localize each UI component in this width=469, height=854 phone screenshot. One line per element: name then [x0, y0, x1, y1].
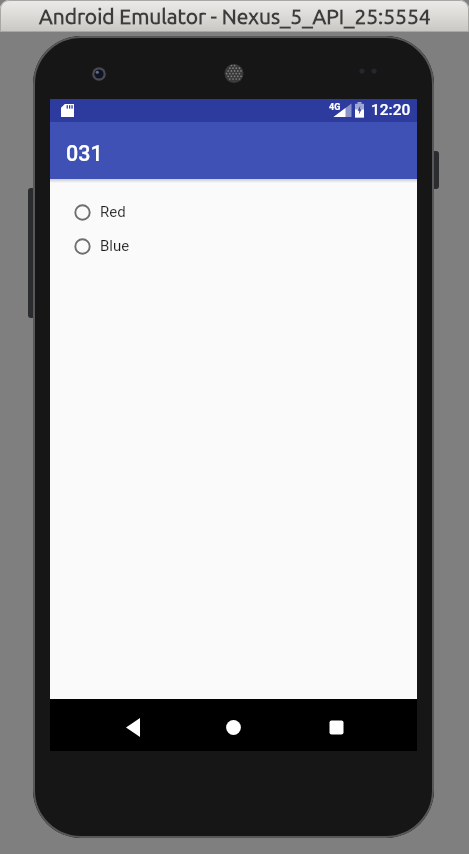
staticText: 031: [66, 141, 103, 166]
button[interactable]: [316, 707, 357, 748]
button[interactable]: [213, 707, 254, 748]
button[interactable]: [112, 707, 153, 748]
button[interactable]: Blue: [50, 229, 417, 263]
staticText: 12:20: [371, 101, 411, 119]
button[interactable]: Red: [50, 195, 417, 229]
staticText: 4G: [329, 102, 341, 113]
staticText: Red: [100, 203, 126, 221]
staticText: Android Emulator - Nexus_5_API_25:5554: [39, 4, 431, 28]
staticText: Blue: [100, 237, 130, 255]
